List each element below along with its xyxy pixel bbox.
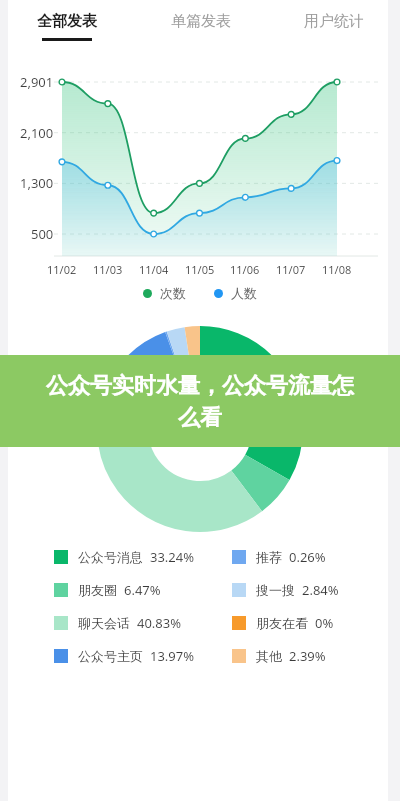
button[interactable]: 其他 <box>232 639 388 672</box>
staticText: 500 <box>31 225 54 243</box>
staticText: 6.47% <box>124 581 161 599</box>
staticText: 用户统计 <box>304 12 364 31</box>
button[interactable]: 朋友在看 <box>232 606 388 639</box>
button[interactable]: 次数 <box>143 285 186 301</box>
staticText: 11/04 <box>139 262 169 277</box>
staticText: 11/07 <box>276 262 306 277</box>
button[interactable]: 朋友圈 <box>54 573 232 606</box>
button[interactable]: 公众号主页 <box>54 639 232 672</box>
staticText: 推荐 <box>256 549 282 565</box>
staticText: 40.83% <box>137 614 182 632</box>
button[interactable]: 人数 <box>214 285 257 301</box>
staticText: 其他 <box>256 648 282 664</box>
button[interactable]: 单篇发表 <box>134 0 267 52</box>
staticText: 13.97% <box>150 647 195 665</box>
staticText: 11/03 <box>93 262 123 277</box>
staticText: 公众号消息 <box>78 549 143 565</box>
staticText: 朋友圈 <box>78 582 117 598</box>
button[interactable]: 推荐 <box>232 540 388 573</box>
button[interactable]: 公众号消息 <box>54 540 232 573</box>
button[interactable]: 全部发表 <box>0 0 134 52</box>
staticText: 朋友在看 <box>256 615 308 631</box>
staticText: 2,100 <box>20 124 54 142</box>
staticText: 2,901 <box>20 73 54 91</box>
staticText: 11/02 <box>47 262 77 277</box>
staticText: 公众号主页 <box>78 648 143 664</box>
staticText: 11/06 <box>230 262 260 277</box>
staticText: 2.84% <box>302 581 339 599</box>
staticText: 公众号实时水量，公众号流量怎么看 <box>46 372 354 431</box>
button[interactable]: 用户统计 <box>267 0 400 52</box>
staticText: 33.24% <box>150 548 195 566</box>
other: Traffic source breakdown <box>97 326 303 532</box>
staticText: 1,300 <box>20 174 54 192</box>
button[interactable]: 搜一搜 <box>232 573 388 606</box>
staticText: 聊天会话 <box>78 615 130 631</box>
staticText: 人数 <box>231 285 257 301</box>
staticText: 11/08 <box>322 262 352 277</box>
staticText: 2.39% <box>289 647 326 665</box>
staticText: 搜一搜 <box>256 582 295 598</box>
staticText: 0% <box>315 614 334 632</box>
button[interactable]: 聊天会话 <box>54 606 232 639</box>
staticText: 次数 <box>160 285 186 301</box>
staticText: 单篇发表 <box>171 12 231 31</box>
staticText: 11/05 <box>185 262 215 277</box>
staticText: 0.26% <box>289 548 326 566</box>
staticText: 全部发表 <box>37 12 97 31</box>
